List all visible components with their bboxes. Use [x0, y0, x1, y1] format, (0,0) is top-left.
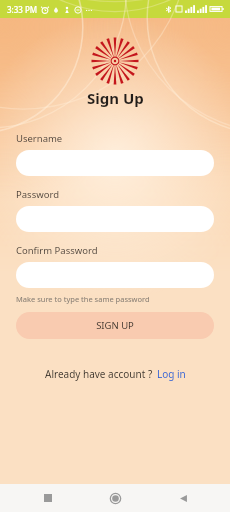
staticText: SIGN UP: [96, 319, 134, 332]
staticText: Username: [16, 132, 63, 145]
staticText: Password: [16, 188, 59, 201]
button[interactable]: Log in: [157, 367, 186, 381]
button[interactable]: Password field: [16, 206, 214, 232]
button[interactable]: Back: [163, 484, 203, 512]
button[interactable]: Home: [95, 484, 135, 512]
staticText: 3:33 PM: [7, 4, 38, 15]
button[interactable]: SIGN UP: [16, 312, 214, 339]
button[interactable]: Username field: [16, 150, 214, 176]
staticText: Make sure to type the same password: [16, 294, 150, 304]
staticText: Log in: [157, 367, 186, 381]
button[interactable]: Confirm password field: [16, 262, 214, 288]
button[interactable]: Recents: [28, 484, 68, 512]
staticText: Sign Up: [87, 88, 144, 108]
staticText: Confirm Password: [16, 244, 98, 257]
staticText: Already have account ?: [45, 367, 153, 381]
